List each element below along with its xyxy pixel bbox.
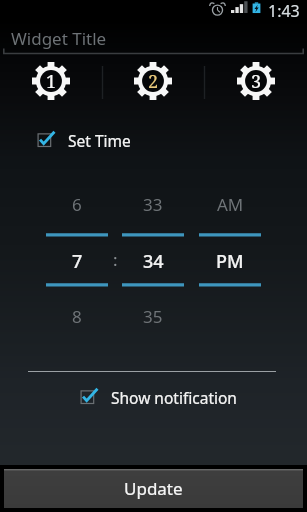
button[interactable]: Set Time: [30, 128, 150, 152]
button[interactable]: AM: [199, 187, 261, 222]
staticText: Update: [124, 477, 183, 500]
staticText: 1: [46, 69, 57, 94]
button[interactable]: Update: [4, 469, 303, 508]
staticText: 8: [72, 305, 82, 328]
button[interactable]: Show notification: [74, 385, 239, 409]
staticText: 7: [72, 249, 83, 274]
staticText: AM: [217, 193, 244, 216]
staticText: :: [113, 248, 118, 271]
staticText: 33: [143, 193, 163, 216]
button[interactable]: 6: [46, 187, 108, 222]
button[interactable]: Widget 3: [231, 62, 281, 100]
button[interactable]: 8: [46, 299, 108, 334]
button[interactable]: Widget Title: [0, 18, 307, 54]
button[interactable]: Widget 2: [128, 62, 178, 100]
staticText: 3: [251, 69, 262, 94]
staticText: 2: [148, 69, 159, 94]
button[interactable]: Widget 1: [26, 62, 76, 100]
button[interactable]: PM: [199, 243, 261, 279]
staticText: 6: [72, 193, 82, 216]
staticText: Set Time: [68, 130, 131, 151]
staticText: 1:43: [268, 0, 300, 18]
staticText: Widget Title: [11, 27, 107, 50]
staticText: 34: [143, 249, 164, 274]
button[interactable]: 33: [122, 187, 184, 222]
staticText: PM: [216, 249, 244, 274]
staticText: 35: [143, 305, 163, 328]
button[interactable]: 7: [46, 243, 108, 279]
button[interactable]: 35: [122, 299, 184, 334]
staticText: Show notification: [111, 387, 237, 408]
button[interactable]: 34: [122, 243, 184, 279]
